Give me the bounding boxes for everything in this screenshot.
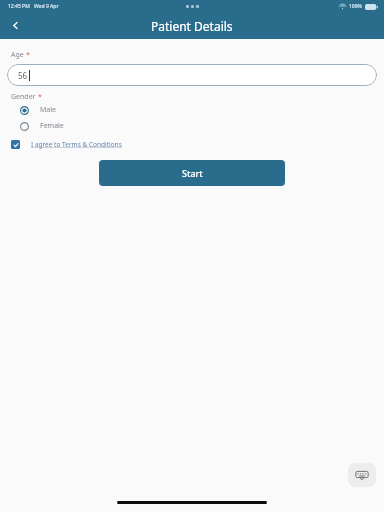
staticText: 12:45 PM — [8, 3, 30, 10]
staticText: Age — [11, 50, 24, 60]
staticText: 100% — [349, 3, 362, 10]
staticText: Male — [40, 105, 57, 115]
button[interactable]: Male — [7, 105, 377, 115]
staticText: Start — [182, 167, 203, 179]
button[interactable]: Back — [0, 12, 30, 39]
staticText: Wed 9 Apr — [34, 3, 59, 10]
button[interactable]: Hide keyboard — [348, 463, 376, 487]
button[interactable]: I agree to Terms & Conditions — [7, 140, 377, 149]
staticText: 56 — [18, 70, 28, 81]
button[interactable]: 56 — [7, 64, 377, 86]
button[interactable]: Start — [99, 160, 285, 186]
staticText: * — [38, 92, 42, 102]
staticText: Patient Details — [151, 18, 233, 34]
button[interactable]: Female — [7, 121, 377, 131]
staticText: Female — [40, 121, 64, 131]
staticText: Gender — [11, 92, 36, 102]
staticText: I agree to Terms & Conditions — [31, 140, 122, 149]
staticText: * — [26, 50, 30, 60]
